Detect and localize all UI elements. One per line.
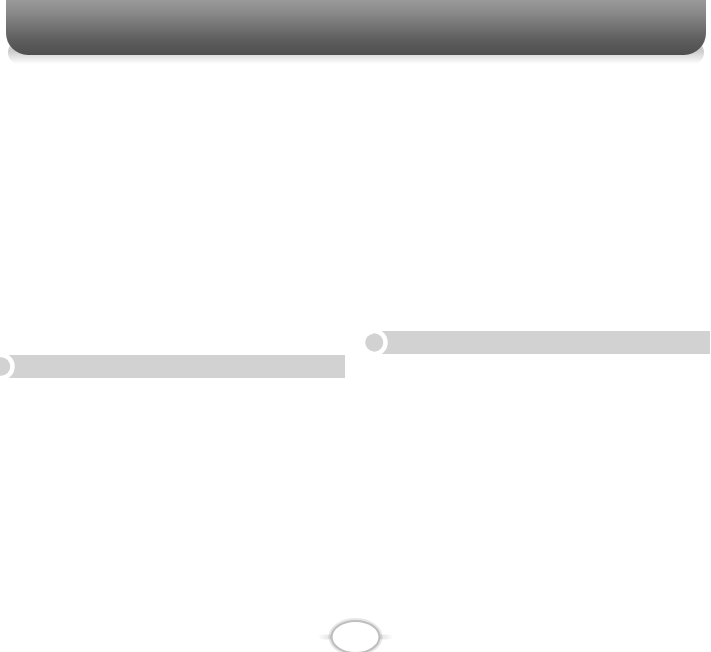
button[interactable]: Loading item [0, 0, 711, 652]
button[interactable]: Home [0, 0, 711, 652]
button[interactable]: App bar [0, 0, 711, 652]
button[interactable]: Loading item [0, 0, 711, 652]
